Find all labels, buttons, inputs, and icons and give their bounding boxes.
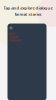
- staticText: format stories: [14, 11, 41, 17]
- staticText: Tap-and-explore dialogue: [3, 5, 52, 10]
